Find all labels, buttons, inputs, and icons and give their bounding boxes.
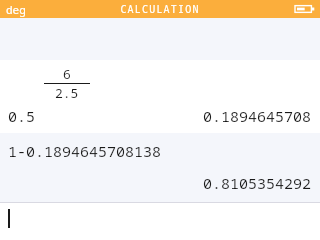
button[interactable]: 1-0.1894645708138 bbox=[0, 133, 320, 202]
staticText: 0.8105354292 bbox=[0, 173, 311, 193]
staticText: 6 bbox=[63, 65, 71, 83]
staticText: 2.5 bbox=[55, 84, 79, 102]
button[interactable]: Expression input bbox=[0, 203, 320, 240]
button[interactable]: deg bbox=[6, 2, 26, 17]
button[interactable]: Battery bbox=[295, 3, 315, 15]
staticText: 0.1894645708 bbox=[0, 106, 311, 126]
staticText: CALCULATION bbox=[120, 2, 200, 16]
staticText: 0.5 bbox=[8, 106, 36, 126]
button[interactable]: 6 bbox=[0, 60, 320, 133]
staticText: 1-0.1894645708138 bbox=[8, 141, 162, 161]
